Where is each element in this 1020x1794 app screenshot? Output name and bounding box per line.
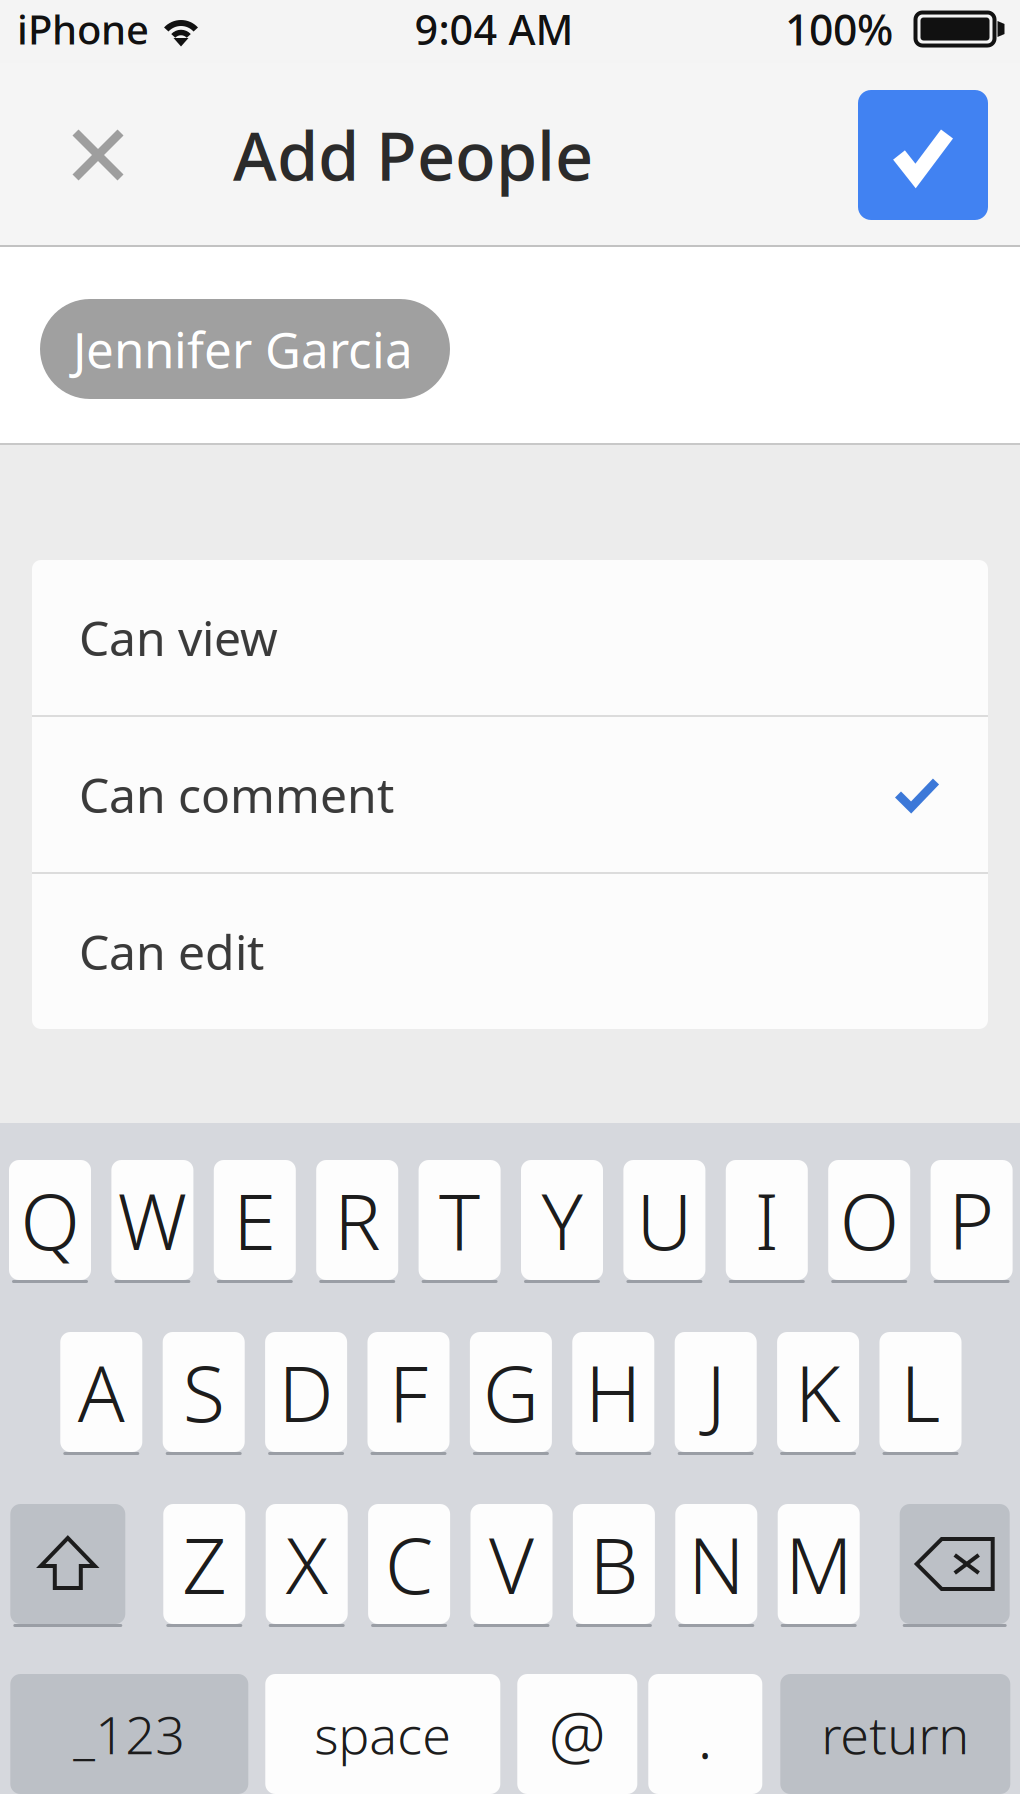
staticText: B bbox=[589, 1513, 638, 1615]
button[interactable]: B bbox=[573, 1504, 655, 1624]
button[interactable]: M bbox=[778, 1504, 860, 1624]
staticText: E bbox=[233, 1169, 276, 1271]
button[interactable]: Can comment bbox=[32, 717, 988, 872]
button[interactable]: F bbox=[367, 1332, 449, 1452]
button[interactable]: R bbox=[316, 1160, 398, 1280]
button[interactable]: G bbox=[470, 1332, 552, 1452]
staticText: O bbox=[840, 1169, 899, 1271]
staticText: Q bbox=[20, 1169, 79, 1271]
button[interactable]: X bbox=[266, 1504, 348, 1624]
staticText: S bbox=[183, 1341, 225, 1443]
button[interactable]: J bbox=[675, 1332, 757, 1452]
staticText: Z bbox=[182, 1513, 226, 1615]
staticText: . bbox=[697, 1691, 713, 1776]
button[interactable]: D bbox=[265, 1332, 347, 1452]
staticText: U bbox=[636, 1169, 692, 1271]
staticText: V bbox=[489, 1513, 534, 1615]
staticText: Can view bbox=[79, 606, 278, 669]
staticText: @ bbox=[549, 1691, 606, 1776]
staticText: K bbox=[795, 1341, 841, 1443]
staticText: L bbox=[900, 1341, 940, 1443]
staticText: Add People bbox=[233, 111, 593, 199]
button[interactable]: C bbox=[368, 1504, 450, 1624]
button[interactable]: . bbox=[648, 1674, 762, 1794]
staticText: Can edit bbox=[79, 920, 264, 983]
button[interactable]: Shift bbox=[10, 1504, 125, 1624]
button[interactable]: W bbox=[111, 1160, 193, 1280]
staticText: 9:04 AM bbox=[414, 2, 573, 56]
button[interactable]: Close bbox=[0, 70, 196, 240]
button[interactable]: Done bbox=[858, 90, 988, 220]
button[interactable]: V bbox=[470, 1504, 552, 1624]
staticText: P bbox=[949, 1169, 995, 1271]
staticText: J bbox=[706, 1341, 725, 1443]
button[interactable]: T bbox=[419, 1160, 501, 1280]
staticText: iPhone bbox=[17, 2, 149, 55]
button[interactable]: @ bbox=[517, 1674, 637, 1794]
button[interactable]: Can edit bbox=[32, 874, 988, 1029]
staticText: I bbox=[755, 1169, 779, 1271]
button[interactable]: K bbox=[777, 1332, 859, 1452]
staticText: Can comment bbox=[79, 763, 394, 826]
staticText: C bbox=[385, 1513, 433, 1615]
button[interactable]: Q bbox=[9, 1160, 91, 1280]
button[interactable]: S bbox=[163, 1332, 245, 1452]
button[interactable]: P bbox=[931, 1160, 1013, 1280]
staticText: 100% bbox=[785, 1, 893, 57]
button[interactable]: N bbox=[675, 1504, 757, 1624]
button[interactable]: H bbox=[572, 1332, 654, 1452]
button[interactable]: Can view bbox=[32, 560, 988, 715]
button[interactable]: space bbox=[265, 1674, 500, 1794]
button[interactable]: L bbox=[879, 1332, 961, 1452]
button[interactable]: O bbox=[828, 1160, 910, 1280]
button[interactable]: Delete bbox=[900, 1504, 1010, 1624]
button[interactable]: I bbox=[726, 1160, 808, 1280]
staticText: Jennifer Garcia bbox=[73, 316, 413, 382]
staticText: W bbox=[117, 1169, 187, 1271]
button[interactable]: Z bbox=[163, 1504, 245, 1624]
staticText: H bbox=[585, 1341, 641, 1443]
button[interactable]: E bbox=[214, 1160, 296, 1280]
staticText: N bbox=[688, 1513, 744, 1615]
staticText: R bbox=[334, 1169, 380, 1271]
button[interactable]: return bbox=[780, 1674, 1010, 1794]
staticText: F bbox=[389, 1341, 428, 1443]
staticText: _123 bbox=[73, 1699, 185, 1769]
button[interactable]: Y bbox=[521, 1160, 603, 1280]
staticText: M bbox=[785, 1513, 852, 1615]
staticText: G bbox=[483, 1341, 539, 1443]
staticText: D bbox=[279, 1341, 334, 1443]
staticText: space bbox=[314, 1699, 451, 1769]
button[interactable]: A bbox=[60, 1332, 142, 1452]
staticText: A bbox=[78, 1341, 125, 1443]
staticText: T bbox=[439, 1169, 480, 1271]
staticText: Y bbox=[541, 1169, 582, 1271]
button[interactable]: _123 bbox=[10, 1674, 248, 1794]
button[interactable]: U bbox=[623, 1160, 705, 1280]
staticText: return bbox=[821, 1699, 969, 1769]
staticText: X bbox=[286, 1513, 328, 1615]
